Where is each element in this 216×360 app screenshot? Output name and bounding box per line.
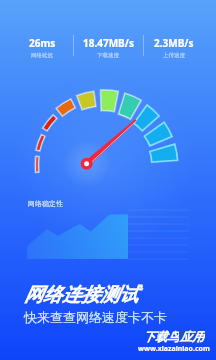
button[interactable]: 2.3MB/s — [141, 4, 207, 59]
staticText: 网络稳定性 — [28, 199, 63, 208]
staticText: 快来查查网络速度卡不卡 — [24, 309, 167, 325]
staticText: www.xiazainiao.com — [138, 344, 210, 354]
button[interactable]: 26ms — [9, 4, 75, 59]
staticText: 下载鸟 — [143, 329, 179, 344]
staticText: 上传速度 — [163, 52, 185, 59]
staticText: 网络延迟 — [31, 52, 53, 59]
staticText: 应用 — [180, 329, 204, 344]
staticText: 18.47MB/s — [83, 36, 134, 50]
staticText: 网络连接测试 — [24, 283, 138, 307]
staticText: 2.3MB/s — [154, 36, 194, 50]
staticText: 下载速度 — [97, 52, 119, 59]
staticText: 26ms — [29, 36, 56, 50]
button[interactable]: 18.47MB/s — [75, 4, 141, 59]
